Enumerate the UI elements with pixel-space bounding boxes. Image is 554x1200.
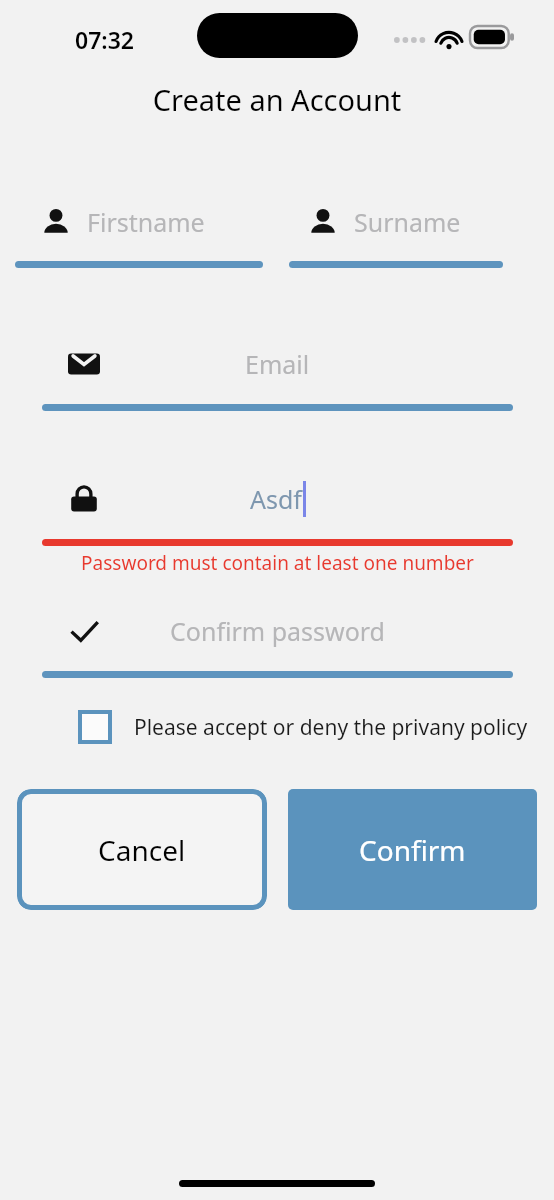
- button[interactable]: Please accept or deny the privany policy: [78, 710, 506, 744]
- staticText: Firstname: [87, 205, 205, 239]
- staticText: Confirm password: [170, 614, 385, 648]
- staticText: Email: [245, 347, 310, 381]
- button[interactable]: Cancel: [17, 789, 267, 910]
- staticText: Cancel: [98, 831, 186, 869]
- button[interactable]: Surname: [289, 205, 503, 268]
- button[interactable]: Asdf: [42, 475, 513, 576]
- button[interactable]: Confirm: [288, 789, 537, 910]
- staticText: 07:32: [75, 24, 134, 55]
- staticText: Confirm: [359, 831, 466, 869]
- staticText: Create an Account: [0, 80, 554, 119]
- button[interactable]: Email: [42, 340, 513, 411]
- other: Home indicator: [179, 1180, 375, 1187]
- button[interactable]: Confirm password: [42, 607, 513, 678]
- staticText: Asdf: [250, 482, 302, 516]
- button[interactable]: Firstname: [15, 205, 263, 268]
- staticText: Please accept or deny the privany policy: [134, 713, 528, 742]
- staticText: Password must contain at least one numbe…: [42, 550, 513, 576]
- staticText: Surname: [354, 205, 461, 239]
